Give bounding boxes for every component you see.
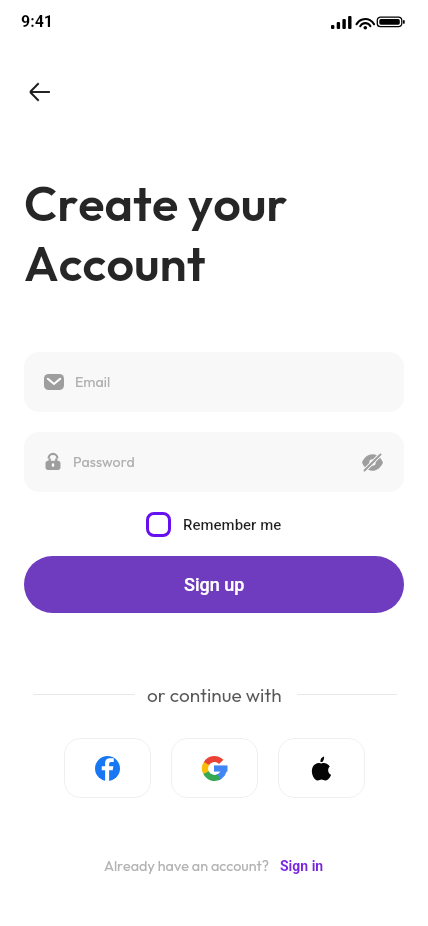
button[interactable]: Remember me <box>142 506 286 543</box>
staticText: Email <box>75 373 111 391</box>
button[interactable]: Continue with Google <box>171 738 258 798</box>
button[interactable]: Email <box>24 352 404 412</box>
button[interactable]: Back <box>18 70 62 114</box>
button[interactable]: Password <box>24 432 404 492</box>
staticText: Create your <box>24 172 288 233</box>
staticText: Sign in <box>280 858 324 874</box>
button[interactable]: Continue with Facebook <box>64 738 151 798</box>
staticText: Account <box>24 232 206 293</box>
button[interactable]: Sign in <box>280 858 324 874</box>
button[interactable]: Show password <box>357 447 387 477</box>
staticText: Sign up <box>184 574 245 595</box>
staticText: Password <box>73 453 135 471</box>
button[interactable]: Sign up <box>24 556 404 613</box>
staticText: 9:41 <box>21 12 54 31</box>
staticText: Remember me <box>183 516 282 534</box>
staticText: or continue with <box>147 683 282 707</box>
button[interactable]: Continue with Apple <box>278 738 365 798</box>
staticText: Already have an account? <box>104 857 270 875</box>
